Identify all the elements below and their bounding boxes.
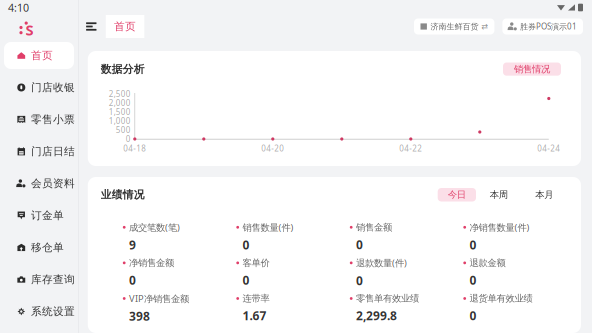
staticText: 04-22 [399,143,422,154]
staticText: 首页 [114,20,136,33]
button[interactable]: 门店日结 [4,138,74,165]
button[interactable]: 今日 [438,188,476,201]
button[interactable]: 订金单 [4,202,74,229]
staticText: 0 [356,273,363,288]
staticText: 门店收银 [31,81,75,94]
staticText: 订金单 [31,209,64,222]
button[interactable]: 济南生鲜百货 [414,18,494,34]
button[interactable]: 首页 [4,42,74,69]
staticText: 首页 [31,49,53,62]
staticText: 0 [356,236,363,252]
staticText: 2,299.8 [356,308,397,324]
staticText: 销售情况 [514,63,550,75]
staticText: 500 [116,125,131,135]
staticText: 退款金额 [469,257,505,269]
staticText: 销售数量(件) [242,221,293,233]
staticText: 本月 [535,189,553,200]
staticText: 成交笔数(笔) [129,221,180,233]
button[interactable]: 本月 [521,188,567,201]
button[interactable]: 胜券POS演示01 [502,18,583,34]
staticText: 今日 [448,189,466,200]
button[interactable]: 首页 [106,15,144,38]
staticText: 2,000 [109,98,131,108]
staticText: 胜券POS演示01 [520,21,577,32]
staticText: 净销售金额 [129,257,174,269]
staticText: 1,000 [109,116,131,126]
staticText: 业绩情况 [101,188,145,201]
staticText: ⇄ [481,22,488,31]
staticText: 2,500 [109,88,131,99]
staticText: 1,500 [109,107,131,117]
staticText: 0 [242,272,249,288]
staticText: 本周 [490,189,508,200]
staticText: 0 [469,308,476,324]
button[interactable]: 系统设置 [4,298,74,325]
staticText: 04-24 [537,143,560,154]
staticText: 0 [242,237,249,253]
staticText: 0 [126,134,131,144]
staticText: 济南生鲜百货 [430,22,478,31]
staticText: 连带率 [242,293,269,304]
button[interactable]: 零售小票 [4,106,74,133]
button[interactable]: 菜单 [79,15,104,38]
staticText: VIP净销售金额 [129,292,189,305]
staticText: 9 [129,237,136,253]
staticText: 398 [129,308,150,324]
staticText: 系统设置 [31,305,75,318]
staticText: 退款数量(件) [356,257,407,269]
button[interactable]: 会员资料 [4,170,74,197]
staticText: 0 [129,272,136,288]
button[interactable]: 库存查询 [4,266,74,293]
button[interactable]: 门店收银 [4,74,74,101]
staticText: 退货单有效业绩 [469,293,532,304]
staticText: 会员资料 [31,177,75,190]
button[interactable]: 本周 [476,188,521,201]
staticText: 净销售数量(件) [469,221,529,233]
staticText: 客单价 [242,257,269,269]
staticText: 04-18 [123,143,146,154]
staticText: 1.67 [242,308,266,324]
staticText: 零售小票 [31,113,75,126]
staticText: S [25,20,33,40]
staticText: 0 [469,237,476,253]
staticText: 零售单有效业绩 [356,293,419,304]
staticText: 门店日结 [31,145,75,158]
button[interactable]: 移仓单 [4,234,74,261]
staticText: 数据分析 [101,62,145,76]
staticText: 库存查询 [31,273,75,286]
staticText: 移仓单 [31,241,64,254]
staticText: 04-20 [261,143,284,154]
staticText: 销售金额 [356,222,392,233]
staticText: 0 [469,272,476,288]
staticText: 4:10 [8,0,29,15]
button[interactable]: 销售情况 [503,62,561,76]
